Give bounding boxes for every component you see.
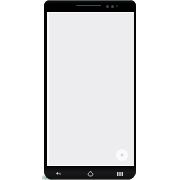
button[interactable]: Add (116, 149, 128, 161)
button[interactable]: Back (49, 167, 67, 180)
button[interactable]: Home (81, 167, 99, 180)
button[interactable]: Recent apps (111, 167, 129, 180)
